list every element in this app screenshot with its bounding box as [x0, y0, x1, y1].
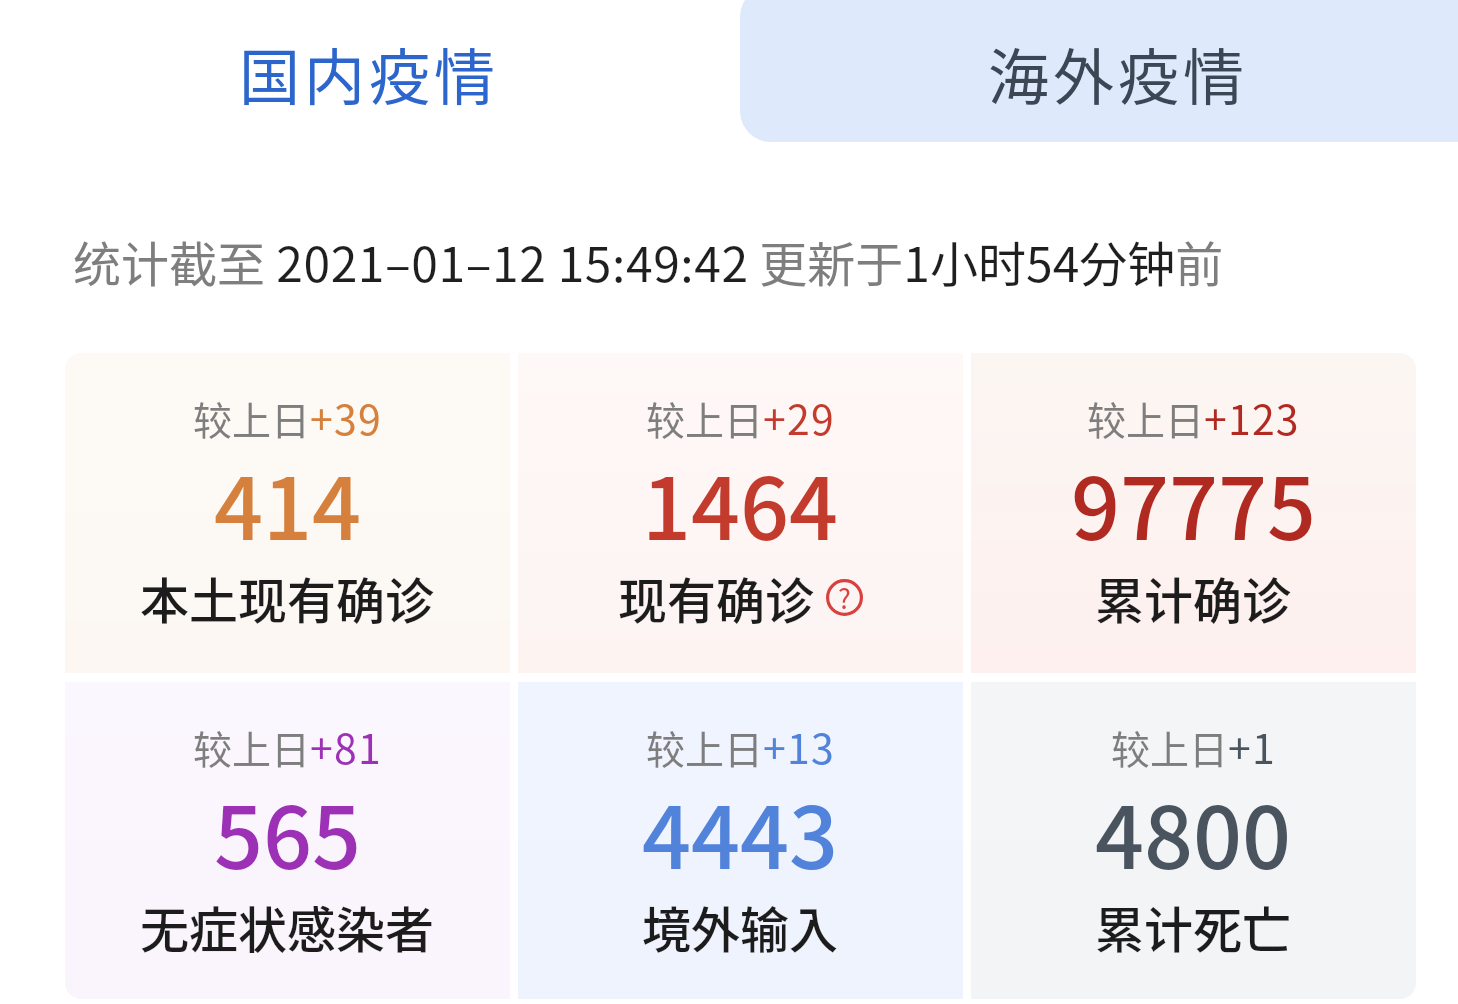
- staticText: 较上日+1: [1111, 716, 1276, 775]
- staticText: 较上日+123: [1087, 387, 1300, 446]
- staticText: 1464: [642, 440, 839, 565]
- staticText: 本土现有确诊: [140, 562, 435, 633]
- button[interactable]: 较上日+1: [971, 682, 1416, 999]
- button[interactable]: 较上日+81: [65, 682, 510, 999]
- staticText: 414: [214, 440, 362, 565]
- staticText: 565: [214, 769, 362, 894]
- staticText: 4443: [642, 769, 839, 894]
- button[interactable]: Info about current confirmed: [826, 579, 863, 616]
- button[interactable]: 海外疫情: [740, 0, 1458, 142]
- staticText: 累计死亡: [1095, 891, 1292, 962]
- staticText: 统计截至 2021–01–12 15:49:42 更新于1小时54分钟前: [73, 226, 1224, 296]
- staticText: 较上日+29: [646, 387, 835, 446]
- staticText: 累计确诊: [1095, 562, 1292, 633]
- staticText: 较上日+39: [193, 387, 382, 446]
- staticText: 4800: [1095, 769, 1292, 894]
- staticText: 海外疫情: [988, 29, 1249, 117]
- button[interactable]: 国内疫情: [0, 0, 740, 155]
- staticText: 国内疫情: [239, 29, 500, 117]
- button[interactable]: 较上日+39: [65, 353, 510, 673]
- staticText: 较上日+81: [193, 716, 382, 775]
- staticText: 现有确诊: [618, 562, 815, 633]
- button[interactable]: 较上日+123: [971, 353, 1416, 673]
- staticText: 境外输入: [642, 891, 839, 962]
- button[interactable]: 较上日+29: [518, 353, 963, 673]
- staticText: ?: [838, 578, 851, 615]
- staticText: 较上日+13: [646, 716, 835, 775]
- staticText: 97775: [1071, 440, 1317, 565]
- staticText: 无症状感染者: [140, 891, 435, 962]
- button[interactable]: 较上日+13: [518, 682, 963, 999]
